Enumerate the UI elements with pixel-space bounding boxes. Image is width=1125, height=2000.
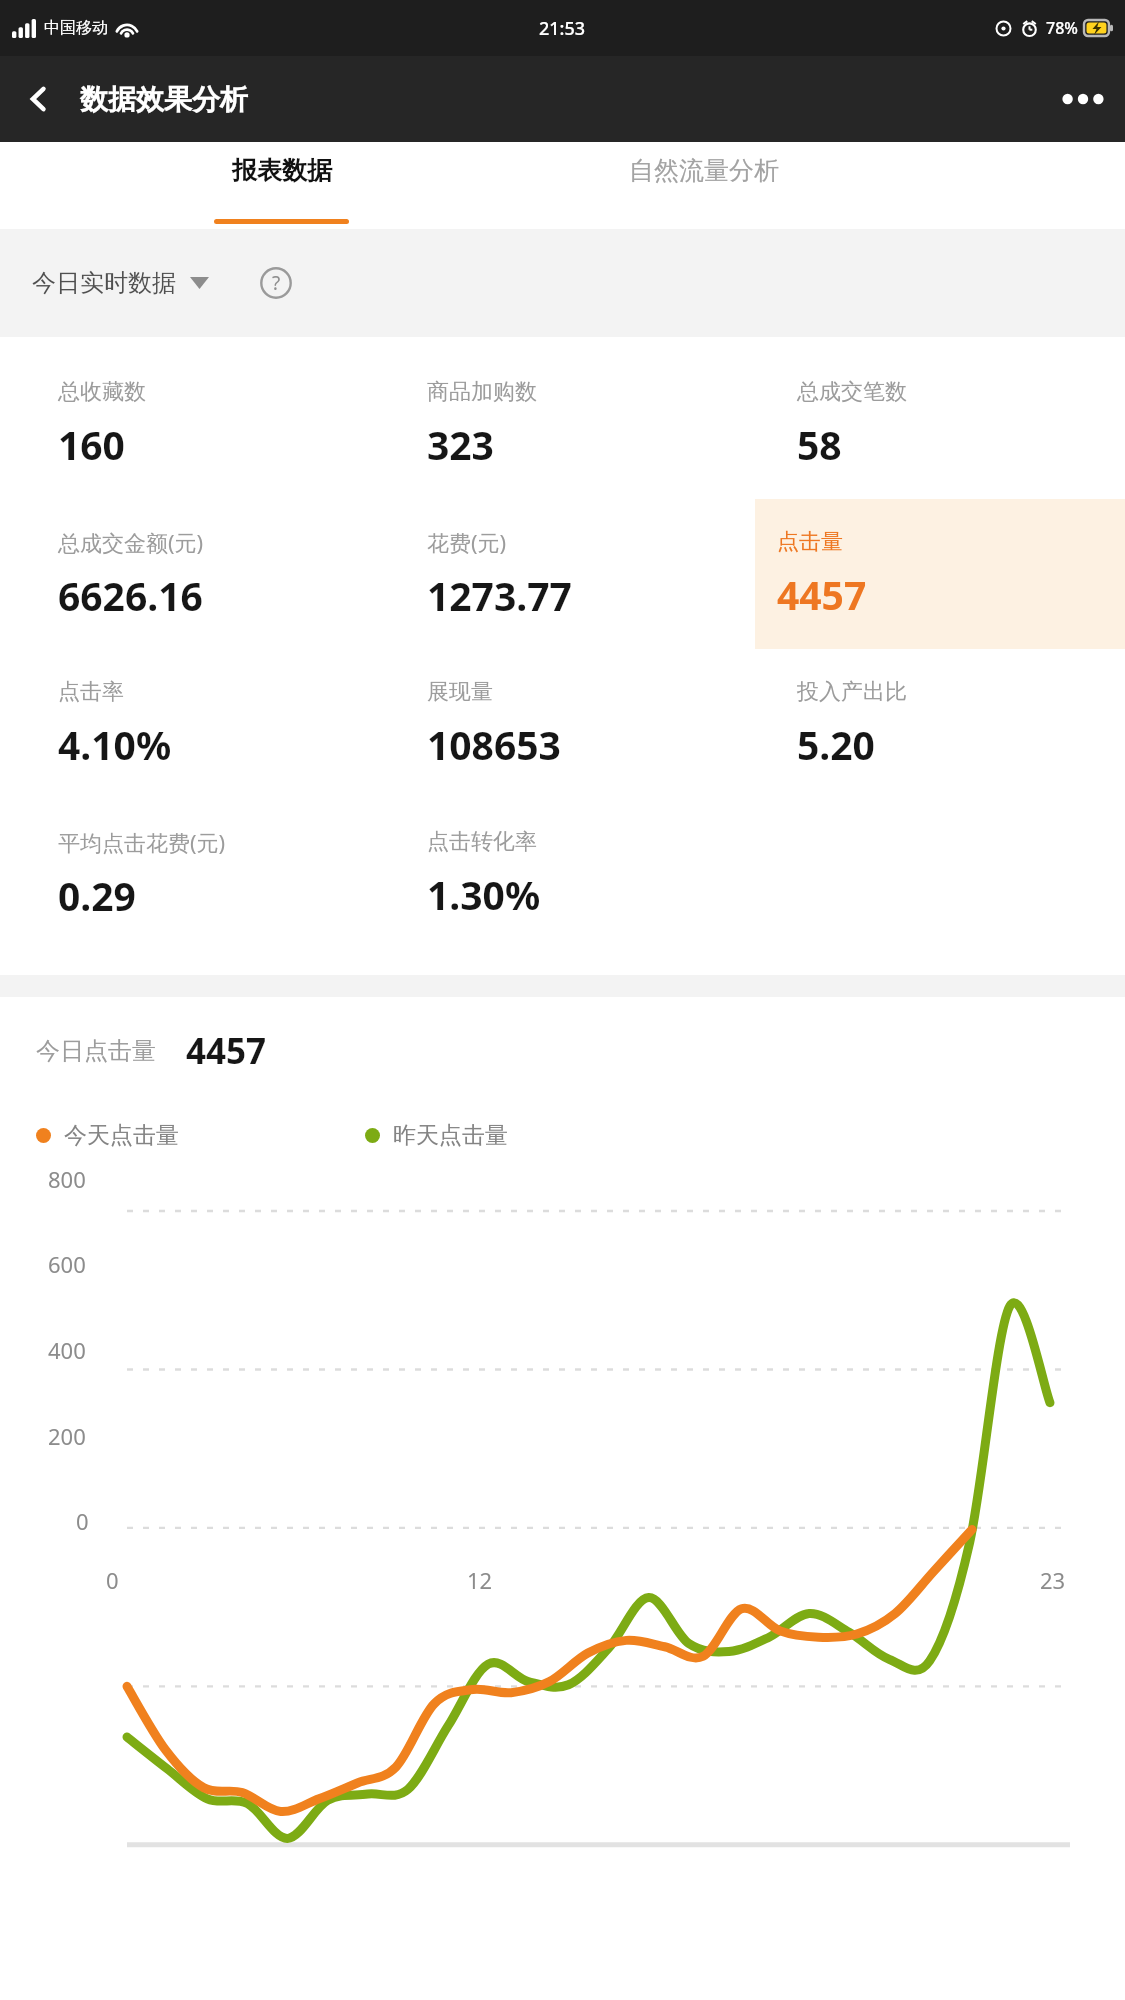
button[interactable]: 投入产出比 (755, 649, 1125, 799)
button[interactable]: Back (10, 70, 68, 128)
staticText: 1.30% (427, 868, 541, 921)
staticText: 平均点击花费(元) (58, 827, 226, 857)
button[interactable]: 自然流量分析 (563, 142, 844, 229)
staticText: 报表数据 (232, 155, 332, 186)
staticText: 21:53 (539, 16, 586, 41)
staticText: 4457 (777, 568, 867, 621)
staticText: 点击量 (777, 528, 843, 556)
staticText: 点击转化率 (427, 828, 537, 856)
button[interactable]: 点击量 (755, 499, 1125, 649)
staticText: 600 (48, 1249, 86, 1279)
staticText: 中国移动 (44, 18, 108, 38)
staticText: 0 (76, 1506, 89, 1536)
button[interactable]: 平均点击花费(元) (16, 799, 385, 949)
staticText: 总成交金额(元) (58, 527, 204, 557)
staticText: 4457 (186, 1027, 267, 1075)
button[interactable]: More options (1051, 67, 1115, 131)
staticText: 花费(元) (427, 527, 507, 557)
staticText: 200 (48, 1421, 86, 1451)
staticText: 数据效果分析 (80, 82, 248, 117)
button[interactable]: 总收藏数 (16, 349, 385, 499)
staticText: 108653 (427, 718, 561, 771)
button[interactable]: 点击率 (16, 649, 385, 799)
staticText: ? (272, 270, 281, 296)
button[interactable]: 花费(元) (385, 499, 755, 649)
staticText: 商品加购数 (427, 378, 537, 406)
staticText: 今日点击量 (36, 1036, 156, 1066)
button[interactable]: 报表数据 (141, 142, 422, 229)
staticText: 点击率 (58, 678, 124, 706)
staticText: 总成交笔数 (797, 378, 907, 406)
button[interactable]: 总成交笔数 (755, 349, 1125, 499)
staticText: 400 (48, 1335, 86, 1365)
staticText: 今日实时数据 (32, 268, 176, 298)
button[interactable]: 今日实时数据 (24, 258, 217, 308)
staticText: 昨天点击量 (393, 1121, 508, 1150)
staticText: 58 (797, 418, 842, 471)
button[interactable]: 点击转化率 (385, 799, 755, 949)
staticText: 展现量 (427, 678, 493, 706)
staticText: 自然流量分析 (629, 155, 779, 186)
staticText: 1273.77 (427, 569, 572, 622)
staticText: 投入产出比 (797, 678, 907, 706)
staticText: 总收藏数 (58, 378, 146, 406)
staticText: 78% (1046, 17, 1078, 39)
staticText: 0.29 (58, 869, 136, 922)
staticText: 800 (48, 1164, 86, 1194)
staticText: 今天点击量 (64, 1121, 179, 1150)
button[interactable]: 商品加购数 (385, 349, 755, 499)
staticText: 6626.16 (58, 569, 203, 622)
button[interactable]: 总成交金额(元) (16, 499, 385, 649)
staticText: 0 (106, 1565, 119, 1595)
staticText: 4.10% (58, 718, 172, 771)
button[interactable]: Help (248, 255, 304, 311)
staticText: 160 (58, 418, 125, 471)
button[interactable]: 展现量 (385, 649, 755, 799)
staticText: 323 (427, 418, 494, 471)
staticText: 23 (1040, 1565, 1066, 1595)
staticText: 12 (467, 1565, 493, 1595)
staticText: 5.20 (797, 718, 875, 771)
